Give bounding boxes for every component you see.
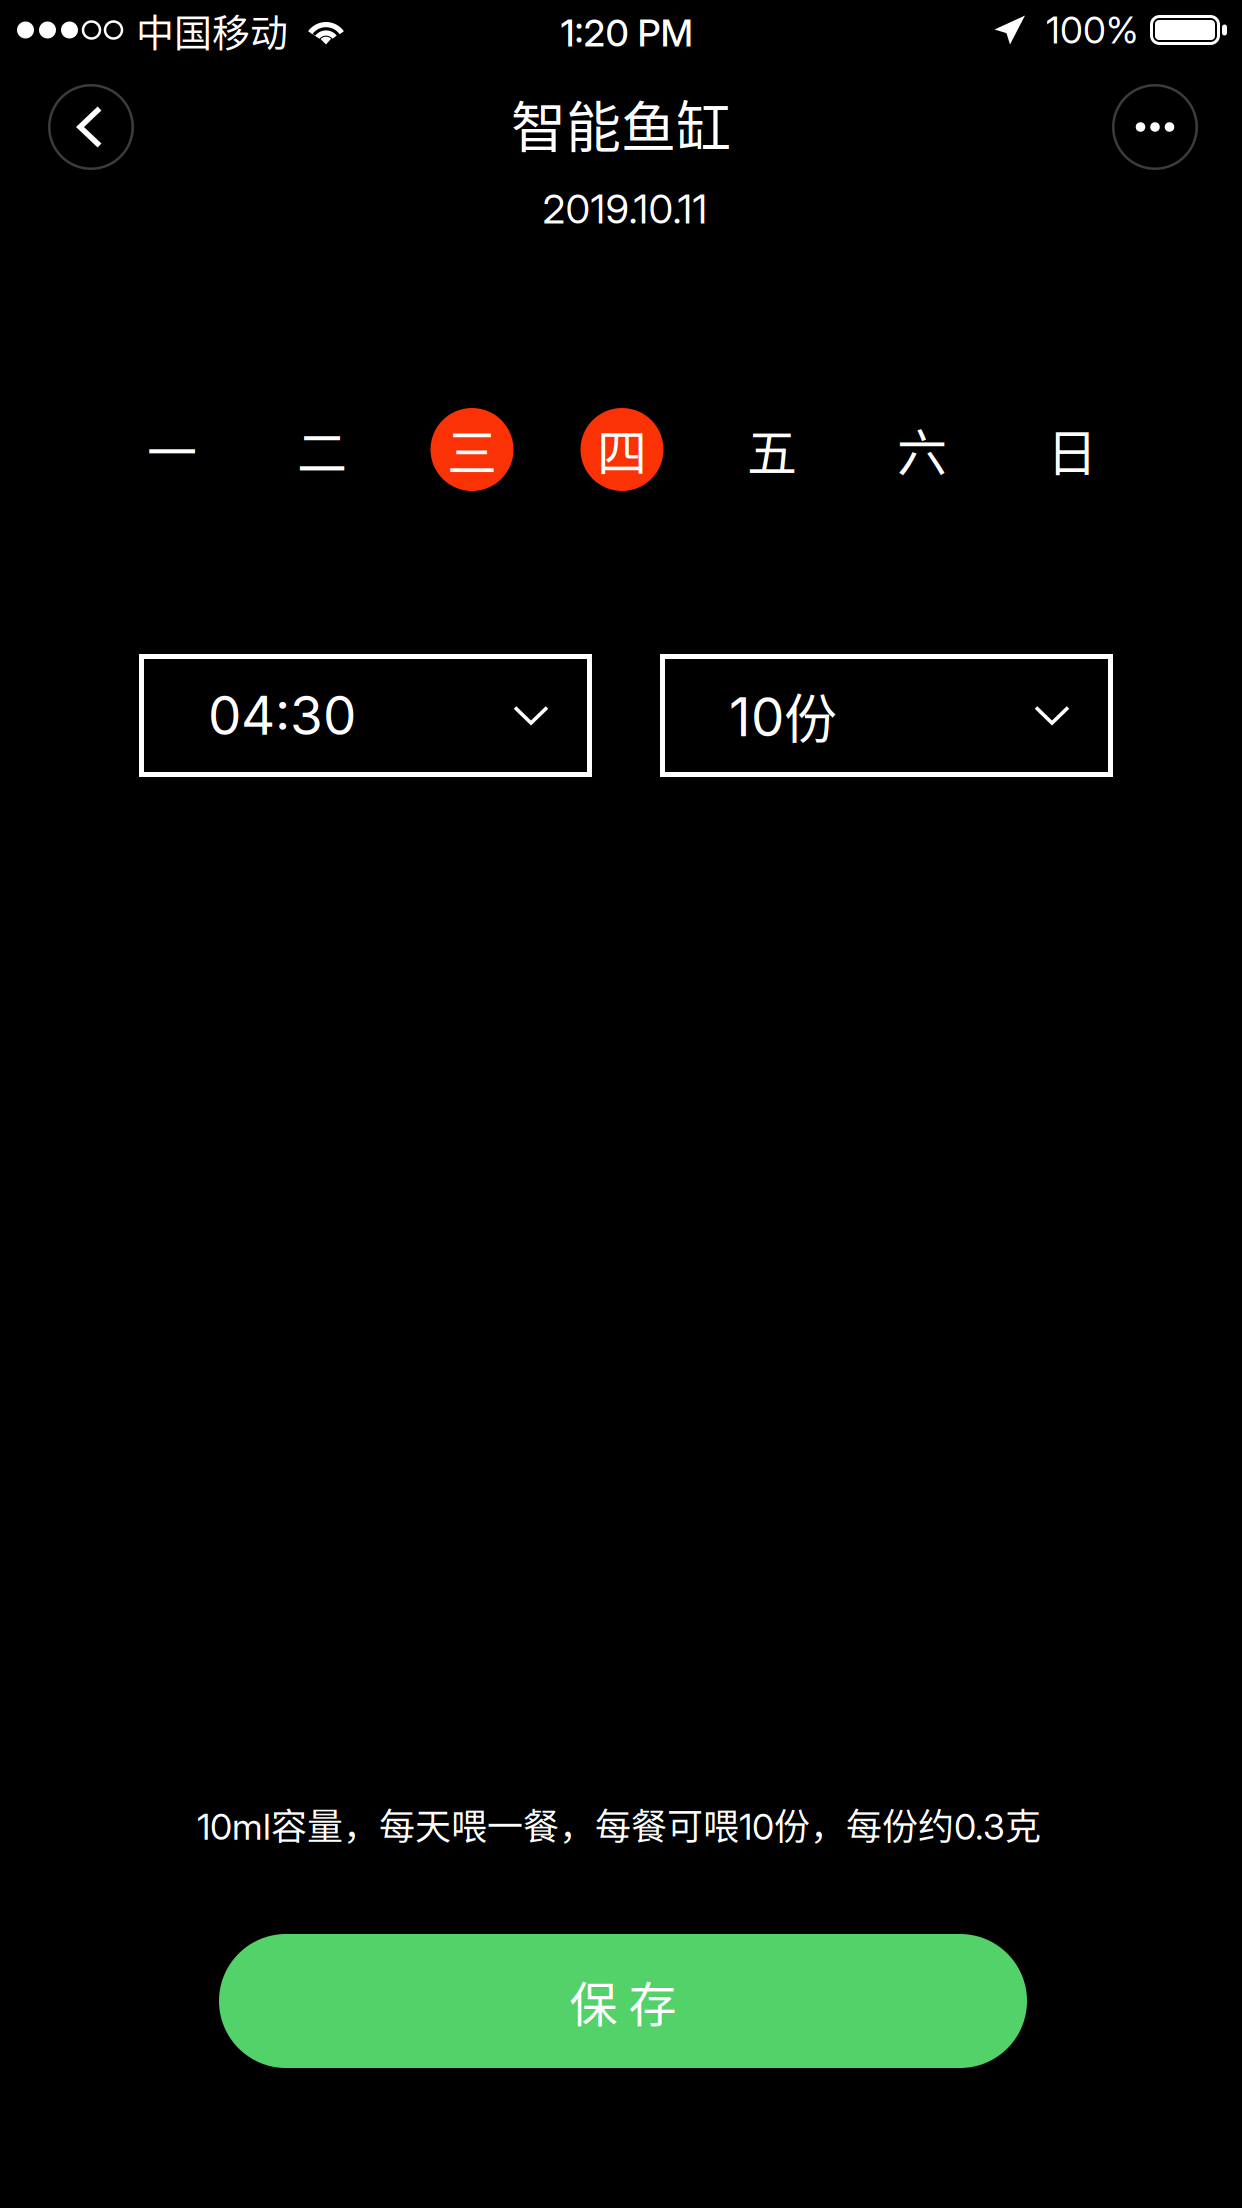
button[interactable]: 日	[1030, 408, 1113, 491]
staticText: 二	[297, 413, 347, 486]
button[interactable]: 六	[880, 408, 963, 491]
staticText: 1:20 PM	[560, 11, 693, 55]
staticText: 四	[597, 413, 647, 486]
staticText: 五	[747, 413, 797, 486]
staticText: 一	[147, 413, 197, 486]
button[interactable]: 10份	[660, 654, 1113, 777]
staticText: 智能鱼缸	[511, 83, 731, 163]
button[interactable]: 保 存	[219, 1934, 1027, 2068]
button[interactable]: 四	[580, 408, 663, 491]
staticText: 100%	[1046, 8, 1138, 52]
staticText: 保 存	[569, 1966, 676, 2036]
button[interactable]: Back	[48, 84, 134, 170]
button[interactable]: More options	[1112, 84, 1198, 170]
button[interactable]: 五	[730, 408, 813, 491]
button[interactable]: 一	[130, 408, 213, 491]
staticText: 中国移动	[136, 2, 288, 57]
staticText: 10份	[729, 677, 837, 754]
staticText: 六	[897, 413, 947, 486]
staticText: 04:30	[208, 683, 356, 747]
staticText: 10ml容量，每天喂一餐，每餐可喂10份，每份约0.3克	[197, 1798, 1041, 1850]
button[interactable]: 04:30	[139, 654, 592, 777]
button[interactable]: 三	[430, 408, 513, 491]
staticText: 日	[1047, 413, 1097, 486]
staticText: 2019.10.11	[542, 185, 707, 233]
button[interactable]: 二	[280, 408, 363, 491]
staticText: 三	[447, 413, 497, 486]
